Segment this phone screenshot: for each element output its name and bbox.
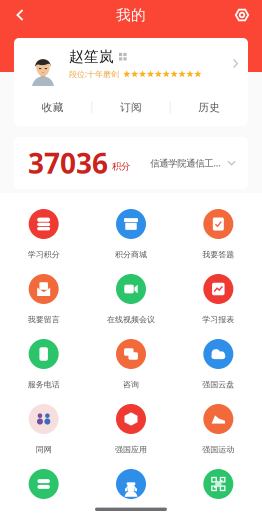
staticText: 我要答题 (202, 250, 234, 259)
staticText: 服务电话 (28, 380, 60, 389)
staticText: 积分商城 (115, 250, 147, 259)
staticText: 咨询 (123, 380, 139, 389)
button[interactable]: 强国云盘 (175, 339, 262, 390)
button[interactable]: 强国应用 (87, 404, 175, 455)
button[interactable]: 设置 (225, 0, 259, 31)
staticText: 段位:十年磨剑 (69, 69, 119, 79)
staticText: 历史 (198, 101, 220, 114)
button[interactable]: 历史 (171, 89, 248, 125)
button[interactable] (0, 469, 87, 519)
staticText: 我要留言 (28, 315, 60, 324)
button[interactable]: 收藏 (14, 89, 91, 125)
staticText: 学习积分 (28, 250, 60, 259)
button[interactable]: 我要留言 (0, 274, 87, 325)
button[interactable]: 我要答题 (175, 209, 262, 260)
staticText: 赵笙岚 (69, 48, 114, 66)
staticText: 在线视频会议 (107, 315, 155, 324)
button[interactable]: 咨询 (87, 339, 175, 390)
staticText: 学习报表 (202, 315, 234, 324)
button[interactable]: 强国运动 (175, 404, 262, 455)
button[interactable]: 赵笙岚 (14, 38, 248, 89)
staticText: 同网 (36, 445, 52, 454)
staticText: 订阅 (120, 101, 142, 114)
staticText: 收藏 (42, 101, 64, 114)
staticText: 强国云盘 (202, 380, 234, 389)
staticText: 积分 (112, 161, 130, 172)
button[interactable]: 信通学院通信工… (150, 157, 236, 169)
staticText: 我的 (116, 6, 146, 24)
staticText: 信通学院通信工… (150, 157, 220, 169)
button[interactable] (175, 469, 262, 519)
button[interactable]: 返回 (3, 0, 37, 31)
button[interactable]: 学习积分 (0, 209, 87, 260)
button[interactable]: 同网 (0, 404, 87, 455)
button[interactable] (87, 469, 175, 519)
button[interactable]: 在线视频会议 (87, 274, 175, 325)
button[interactable]: 学习报表 (175, 274, 262, 325)
staticText: 强国应用 (115, 445, 147, 454)
button[interactable]: 服务电话 (0, 339, 87, 390)
staticText: 强国运动 (202, 445, 234, 454)
button[interactable]: 积分商城 (87, 209, 175, 260)
button[interactable]: 订阅 (92, 89, 170, 125)
staticText: 37036 (28, 144, 108, 182)
